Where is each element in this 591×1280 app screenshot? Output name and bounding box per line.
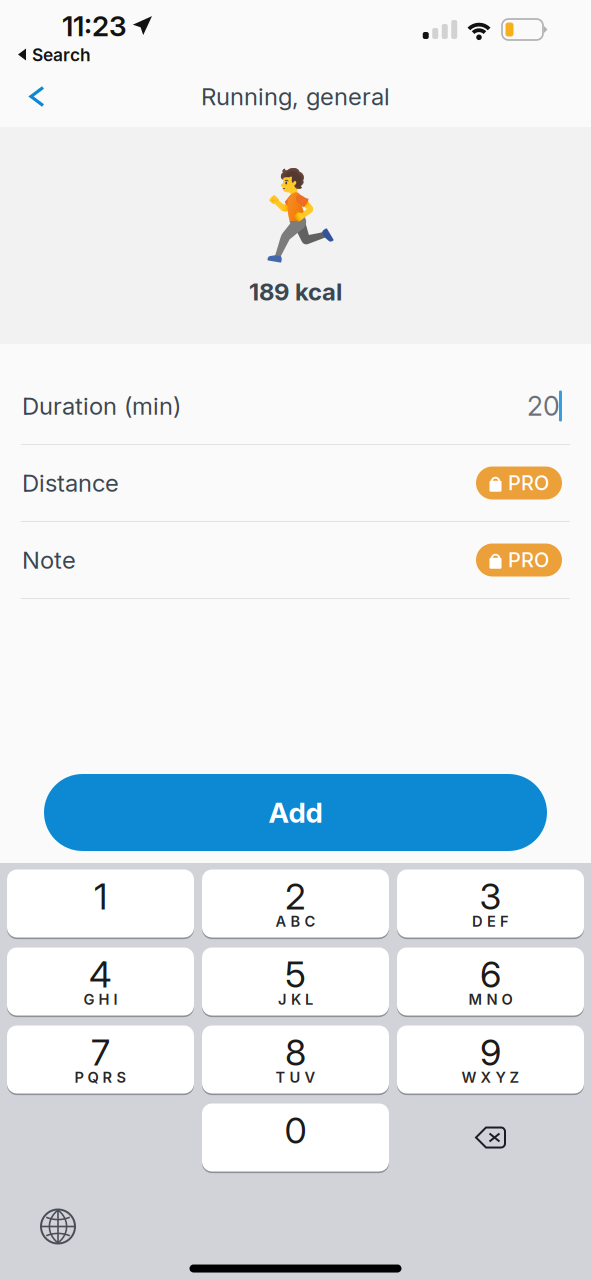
staticText: 189 kcal — [249, 277, 342, 306]
staticText: 9 — [480, 1031, 501, 1074]
button[interactable]: PRO — [476, 543, 562, 576]
staticText: 4 — [89, 953, 112, 996]
staticText: PRO — [508, 471, 549, 495]
button[interactable]: 3 — [397, 869, 584, 937]
staticText: Duration (min) — [22, 391, 181, 420]
staticText: A B C — [275, 913, 315, 930]
staticText: J K L — [278, 991, 313, 1008]
button[interactable]: Delete — [397, 1103, 584, 1171]
button[interactable]: 6 — [397, 947, 584, 1015]
button[interactable]: 8 — [202, 1025, 389, 1093]
staticText: 11:23 — [62, 9, 127, 43]
staticText: G H I — [83, 991, 117, 1008]
button[interactable]: 7 — [7, 1025, 194, 1093]
button[interactable]: Search — [0, 44, 591, 66]
staticText: Note — [22, 545, 76, 574]
button[interactable]: PRO — [476, 466, 562, 499]
button[interactable]: 0 — [202, 1103, 389, 1171]
staticText: 5 — [285, 953, 306, 996]
button[interactable]: 2 — [202, 869, 389, 937]
staticText: P Q R S — [74, 1069, 126, 1086]
staticText: T U V — [275, 1069, 315, 1086]
button[interactable]: Next keyboard — [28, 1196, 88, 1256]
staticText: 2 — [285, 875, 306, 918]
staticText: W X Y Z — [461, 1069, 519, 1086]
staticText: Running, general — [201, 82, 390, 111]
button[interactable]: Back — [10, 74, 66, 118]
button[interactable]: 9 — [397, 1025, 584, 1093]
button[interactable]: 1 — [7, 869, 194, 937]
staticText: 3 — [479, 875, 501, 918]
staticText: PRO — [508, 548, 549, 572]
staticText: Search — [32, 44, 91, 65]
staticText: D E F — [472, 913, 509, 930]
staticText: 20 — [527, 390, 560, 422]
staticText: 6 — [480, 953, 501, 996]
staticText: M N O — [468, 991, 512, 1008]
button[interactable]: Add — [44, 774, 547, 851]
staticText: 7 — [91, 1031, 110, 1074]
staticText: Distance — [22, 468, 119, 497]
staticText: 🏃 — [240, 165, 350, 268]
button[interactable]: 5 — [202, 947, 389, 1015]
staticText: 0 — [284, 1109, 306, 1152]
staticText: 1 — [94, 875, 107, 918]
button[interactable]: 4 — [7, 947, 194, 1015]
staticText: Add — [268, 796, 322, 829]
staticText: 8 — [285, 1031, 306, 1074]
